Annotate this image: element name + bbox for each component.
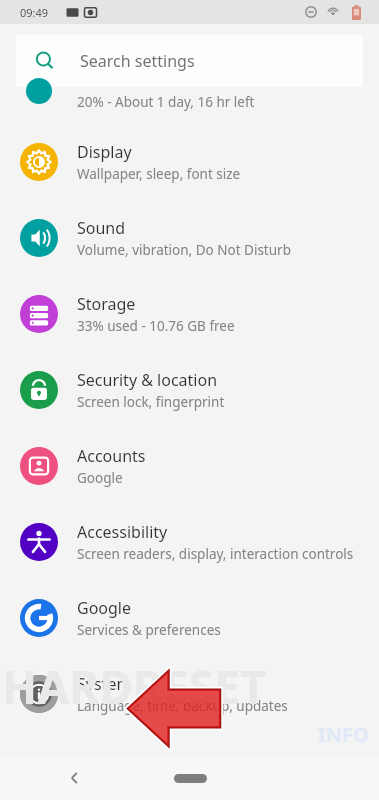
staticText: 33% used - 10.76 GB free [77, 317, 235, 335]
staticText: Screen lock, fingerprint [77, 393, 225, 411]
button[interactable]: System [0, 656, 379, 732]
staticText: Accounts [77, 445, 146, 467]
staticText: Storage [77, 293, 136, 315]
staticText: Search settings [80, 50, 195, 72]
staticText: Accessibility [77, 521, 168, 543]
staticText: Language, time, backup, updates [77, 697, 288, 715]
button[interactable]: Back [58, 761, 92, 795]
staticText: Security & location [77, 369, 218, 391]
staticText: Volume, vibration, Do Not Disturb [77, 241, 291, 259]
staticText: Screen readers, display, interaction con… [77, 545, 354, 563]
staticText: INFO [318, 721, 369, 748]
staticText: Google [77, 597, 132, 619]
staticText: 20% - About 1 day, 16 hr left [77, 93, 255, 111]
staticText: 09:49 [20, 5, 49, 20]
button[interactable]: Accounts [0, 428, 379, 504]
staticText: Sound [77, 217, 126, 239]
button[interactable]: Security & location [0, 352, 379, 428]
staticText: HARDRESET [2, 655, 267, 718]
staticText: Wallpaper, sleep, font size [77, 165, 241, 183]
button[interactable]: Home [168, 765, 212, 791]
button[interactable]: 20% - About 1 day, 16 hr left [0, 98, 379, 124]
button[interactable]: Storage [0, 276, 379, 352]
staticText: Google [77, 469, 123, 487]
button[interactable]: Google [0, 580, 379, 656]
button[interactable]: Accessibility [0, 504, 379, 580]
button[interactable]: Search settings [16, 35, 363, 87]
button[interactable]: Sound [0, 200, 379, 276]
staticText: Display [77, 141, 132, 163]
staticText: Services & preferences [77, 621, 221, 639]
button[interactable]: Display [0, 124, 379, 200]
staticText: System [77, 673, 132, 695]
